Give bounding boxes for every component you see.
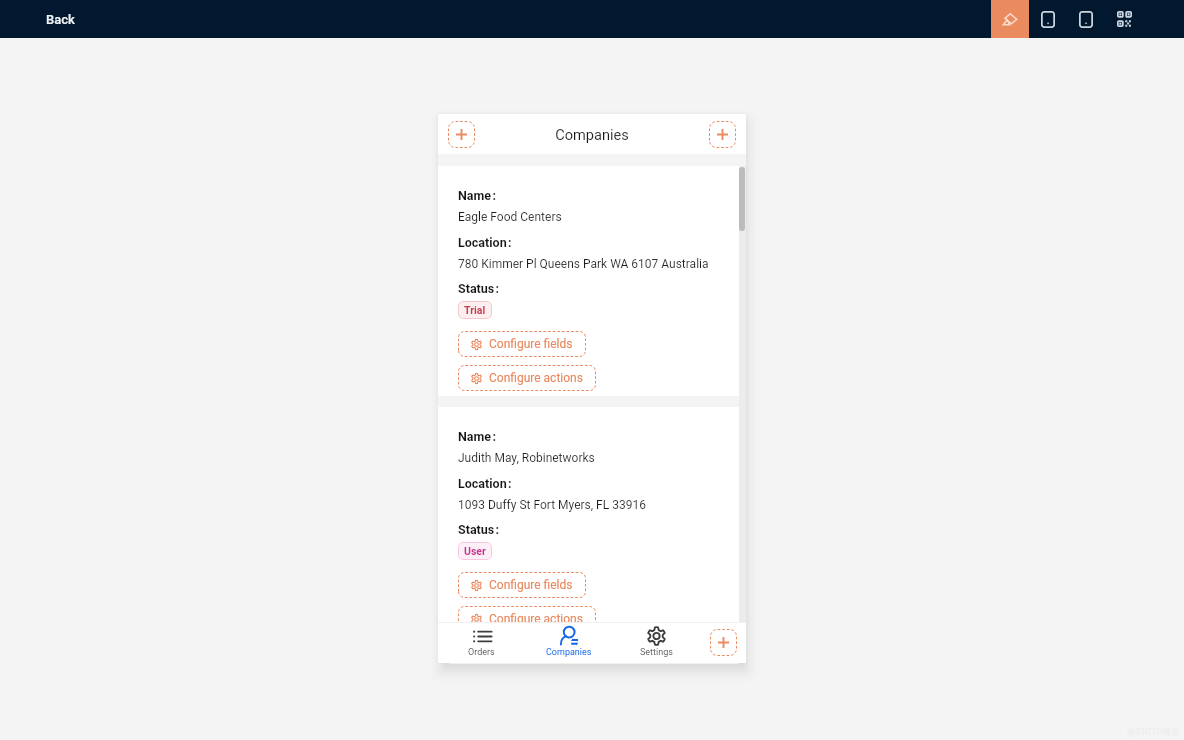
- staticText: Name :: [458, 188, 496, 203]
- staticText: Location :: [458, 235, 512, 250]
- button[interactable]: Tablet preview: [1067, 0, 1105, 38]
- staticText: Configure fields: [489, 578, 573, 592]
- staticText: Status :: [458, 281, 500, 296]
- button[interactable]: Configure fields: [458, 572, 586, 598]
- button[interactable]: Orders: [438, 622, 525, 662]
- staticText: Name :: [458, 429, 496, 444]
- staticText: Back: [46, 12, 75, 27]
- staticText: Settings: [640, 647, 673, 658]
- button[interactable]: Configure actions: [458, 606, 596, 622]
- button[interactable]: Phone preview: [1029, 0, 1067, 38]
- staticText: 1093 Duffy St Fort Myers, FL 33916: [458, 498, 646, 512]
- button[interactable]: Configure actions: [458, 365, 596, 391]
- staticText: Companies: [555, 126, 629, 143]
- button[interactable]: Configure fields: [458, 331, 586, 357]
- button[interactable]: QR code: [1105, 0, 1143, 38]
- button[interactable]: Inspect: [991, 0, 1029, 38]
- button[interactable]: Add: [710, 629, 737, 656]
- staticText: Location :: [458, 476, 512, 491]
- staticText: Configure fields: [489, 337, 573, 351]
- staticText: Eagle Food Centers: [458, 210, 562, 224]
- staticText: Status :: [458, 522, 500, 537]
- button[interactable]: User: [458, 542, 492, 560]
- staticText: User: [464, 545, 486, 557]
- button[interactable]: Add: [709, 121, 736, 148]
- staticText: Orders: [468, 647, 495, 658]
- staticText: Configure actions: [489, 371, 583, 385]
- staticText: Judith May, Robinetworks: [458, 451, 595, 465]
- staticText: Trial: [464, 304, 486, 316]
- button[interactable]: Trial: [458, 301, 492, 319]
- button[interactable]: Back: [40, 7, 81, 32]
- staticText: Configure actions: [489, 612, 583, 622]
- button[interactable]: Settings: [612, 622, 700, 662]
- button[interactable]: Companies: [525, 622, 612, 662]
- button[interactable]: Add: [448, 121, 475, 148]
- staticText: Companies: [546, 647, 592, 658]
- staticText: 780 Kimmer Pl Queens Park WA 6107 Austra…: [458, 257, 709, 271]
